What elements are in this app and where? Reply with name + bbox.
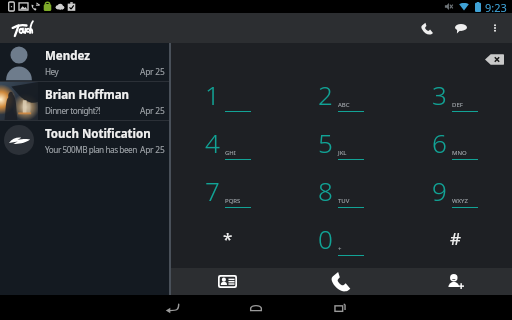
- button[interactable]: Touch: [8, 16, 38, 40]
- staticText: 7: [205, 173, 220, 208]
- button[interactable]: 9: [398, 166, 512, 214]
- staticText: Touch Notification: [45, 126, 151, 142]
- staticText: #: [450, 227, 461, 250]
- staticText: Brian Hoffman: [45, 87, 130, 103]
- staticText: JKL: [338, 149, 347, 157]
- button[interactable]: More options: [478, 13, 512, 43]
- staticText: DEF: [452, 101, 463, 109]
- staticText: 8: [318, 173, 333, 208]
- button[interactable]: 7: [171, 166, 284, 214]
- button[interactable]: Touch Notification: [0, 121, 169, 159]
- staticText: Apr 25: [140, 144, 165, 155]
- staticText: 4: [205, 125, 220, 160]
- button[interactable]: Call: [410, 13, 444, 43]
- button[interactable]: Add contact: [398, 268, 512, 295]
- staticText: Apr 25: [140, 66, 165, 77]
- staticText: GHI: [225, 149, 236, 157]
- button[interactable]: Dialpad: [284, 268, 398, 295]
- staticText: +: [338, 245, 342, 253]
- staticText: 5: [318, 125, 333, 160]
- staticText: Your 500MB plan has been: [45, 144, 137, 155]
- button[interactable]: 5: [284, 118, 398, 166]
- staticText: 9:23: [485, 0, 507, 13]
- button[interactable]: 2: [284, 70, 398, 118]
- button[interactable]: Back: [143, 295, 201, 320]
- button[interactable]: *: [171, 214, 284, 262]
- button[interactable]: Contacts: [171, 268, 284, 295]
- staticText: Apr 25: [140, 105, 165, 116]
- staticText: 9: [432, 173, 447, 208]
- staticText: TUV: [338, 197, 350, 205]
- staticText: 6: [432, 125, 447, 160]
- staticText: 0: [318, 221, 333, 256]
- button[interactable]: 3: [398, 70, 512, 118]
- button[interactable]: #: [398, 214, 512, 262]
- staticText: *: [223, 227, 233, 250]
- button[interactable]: Messages: [444, 13, 478, 43]
- button[interactable]: 8: [284, 166, 398, 214]
- staticText: 2: [318, 77, 333, 112]
- button[interactable]: Brian Hoffman: [0, 82, 169, 120]
- button[interactable]: Backspace: [485, 54, 504, 65]
- staticText: 1: [205, 77, 220, 112]
- staticText: Hey: [45, 66, 59, 77]
- staticText: PQRS: [225, 197, 241, 205]
- button[interactable]: 4: [171, 118, 284, 166]
- staticText: ABC: [338, 101, 350, 109]
- staticText: MNO: [452, 149, 467, 157]
- staticText: Mendez: [45, 48, 90, 64]
- button[interactable]: Recents: [311, 295, 369, 320]
- staticText: Dinner tonight?!: [45, 105, 101, 116]
- button[interactable]: 1: [171, 70, 284, 118]
- staticText: 3: [432, 77, 447, 112]
- button[interactable]: Mendez: [0, 43, 169, 81]
- staticText: WXYZ: [452, 197, 468, 205]
- button[interactable]: 6: [398, 118, 512, 166]
- button[interactable]: Home: [227, 295, 285, 320]
- button[interactable]: 0: [284, 214, 398, 262]
